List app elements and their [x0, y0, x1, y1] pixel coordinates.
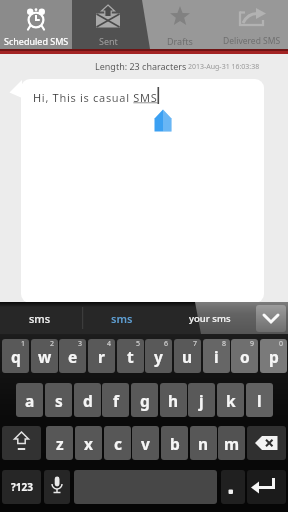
staticText: n — [198, 433, 209, 454]
staticText: sms — [29, 311, 51, 326]
button[interactable]: z — [46, 426, 73, 460]
staticText: o — [240, 346, 250, 367]
button[interactable] — [247, 426, 286, 460]
button[interactable]: Hi, This is casual SMS — [21, 79, 264, 303]
button[interactable] — [221, 470, 245, 504]
button[interactable]: q — [2, 339, 29, 373]
staticText: 3 — [78, 339, 83, 349]
staticText: 6 — [164, 339, 169, 349]
button[interactable]: f — [102, 383, 129, 417]
button[interactable]: x — [75, 426, 102, 460]
button[interactable]: h — [160, 383, 187, 417]
staticText: z — [56, 433, 64, 454]
button[interactable]: g — [131, 383, 158, 417]
staticText: e — [68, 346, 78, 367]
button[interactable]: o — [231, 339, 258, 373]
staticText: Hi, This is casual SMS — [33, 90, 158, 105]
button[interactable]: p — [260, 339, 287, 373]
staticText: b — [170, 433, 180, 454]
button[interactable]: Scheduled SMS — [0, 0, 72, 49]
button[interactable]: b — [161, 426, 188, 460]
staticText: j — [199, 390, 204, 411]
button[interactable]: v — [132, 426, 159, 460]
staticText: Delivered SMS — [223, 35, 281, 47]
button[interactable]: r — [88, 339, 115, 373]
staticText: a — [25, 390, 35, 411]
button[interactable]: l — [246, 383, 273, 417]
button[interactable] — [247, 470, 286, 504]
button[interactable]: k — [217, 383, 244, 417]
button[interactable]: Drafts — [144, 0, 216, 49]
staticText: w — [38, 346, 52, 367]
staticText: Length: 23 characters — [95, 60, 187, 72]
button[interactable]: j — [188, 383, 215, 417]
button[interactable]: d — [74, 383, 101, 417]
staticText: 5 — [136, 339, 141, 349]
button[interactable] — [256, 305, 286, 332]
staticText: u — [182, 346, 193, 367]
button[interactable]: Delivered SMS — [216, 0, 288, 49]
staticText: Scheduled SMS — [4, 35, 69, 47]
staticText: x — [84, 433, 93, 454]
button[interactable]: m — [218, 426, 245, 460]
staticText: q — [11, 346, 21, 367]
staticText: 2 — [50, 339, 55, 349]
button[interactable]: i — [203, 339, 230, 373]
staticText: r — [98, 346, 105, 367]
staticText: m — [224, 433, 240, 454]
button[interactable]: sms — [14, 306, 66, 330]
button[interactable]: t — [117, 339, 144, 373]
button[interactable]: your sms — [178, 306, 242, 330]
staticText: 9 — [250, 339, 255, 349]
staticText: Sent — [99, 35, 118, 47]
button[interactable]: y — [145, 339, 172, 373]
staticText: 2013-Aug-31 16:03:38 — [188, 62, 260, 72]
staticText: y — [154, 346, 163, 367]
button[interactable] — [44, 470, 70, 504]
staticText: 1 — [21, 339, 26, 349]
staticText: g — [140, 390, 150, 411]
staticText: i — [214, 346, 219, 367]
staticText: v — [141, 433, 150, 454]
button[interactable]: n — [190, 426, 217, 460]
staticText: 7 — [193, 339, 198, 349]
button[interactable]: a — [16, 383, 43, 417]
staticText: your sms — [189, 312, 231, 325]
staticText: ?123 — [11, 480, 33, 494]
staticText: t — [127, 346, 134, 367]
button[interactable]: s — [45, 383, 72, 417]
button[interactable]: e — [59, 339, 86, 373]
staticText: 0 — [279, 339, 284, 349]
button[interactable]: c — [104, 426, 131, 460]
button[interactable]: u — [174, 339, 201, 373]
button[interactable]: Sent — [72, 0, 144, 49]
staticText: l — [257, 390, 262, 411]
staticText: 8 — [222, 339, 227, 349]
button[interactable] — [2, 426, 41, 460]
staticText: p — [269, 346, 279, 367]
staticText: sms — [111, 311, 133, 326]
staticText: d — [83, 390, 93, 411]
staticText: s — [55, 390, 63, 411]
staticText: k — [226, 390, 236, 411]
staticText: Drafts — [167, 35, 193, 47]
staticText: h — [168, 390, 179, 411]
button[interactable]: ?123 — [2, 470, 41, 504]
staticText: c — [114, 433, 122, 454]
button[interactable]: w — [31, 339, 58, 373]
staticText: f — [113, 390, 119, 411]
button[interactable]: sms — [96, 306, 148, 330]
staticText: 4 — [107, 339, 112, 349]
